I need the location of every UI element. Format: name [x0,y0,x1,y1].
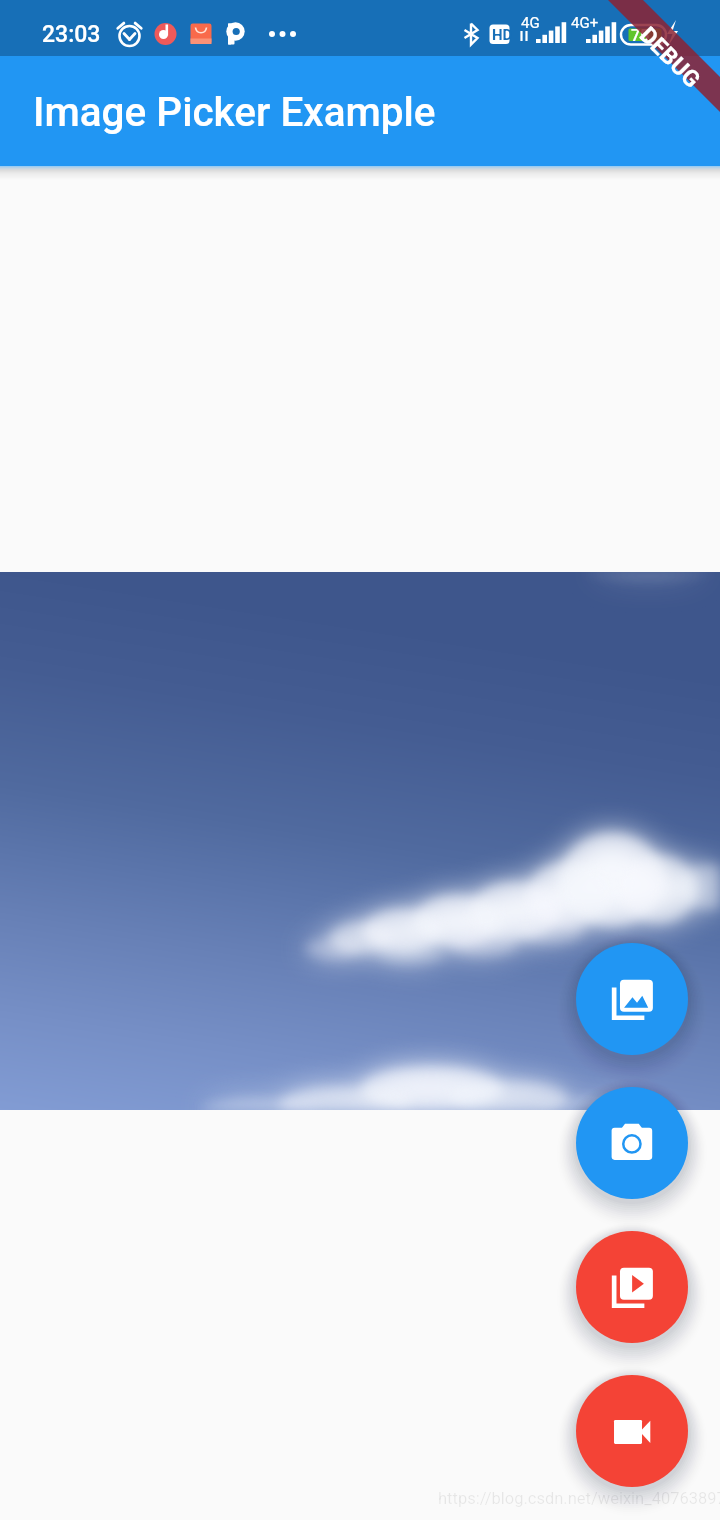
staticText: HD [492,26,513,44]
staticText: 4G+ [571,14,599,32]
staticText: https://blog.csdn.net/weixin_40763897 [438,1489,720,1508]
staticText: 23:03 [42,21,101,48]
button[interactable]: Record a video [576,1375,688,1487]
button[interactable]: Pick image from gallery [576,943,688,1055]
staticText: 4G [521,14,540,32]
button[interactable]: Take a photo [576,1087,688,1199]
staticText: 75 [631,26,650,45]
staticText: Image Picker Example [33,88,436,135]
button[interactable]: Pick video from gallery [576,1231,688,1343]
staticText: DEBUG [634,22,706,94]
